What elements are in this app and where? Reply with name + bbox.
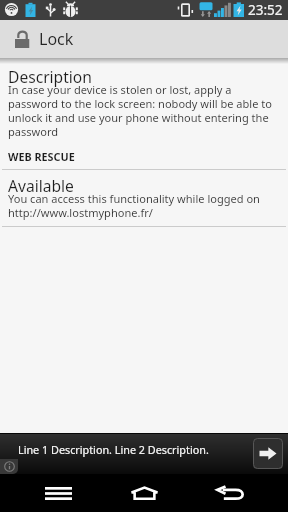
button[interactable]: Info [0,459,18,474]
staticText: Lock [39,28,74,50]
button[interactable]: Next [253,438,283,469]
button[interactable]: Back [201,474,258,512]
staticText: WEB RESCUE [8,149,75,164]
button[interactable]: Home [116,474,173,512]
button[interactable]: Recent apps [30,474,87,512]
staticText: Available [8,175,74,196]
staticText: 23:52 [248,1,283,19]
staticText: Line 1 Description. Line 2 Description. [18,442,209,457]
staticText: In case your device is stolen or lost, a… [8,82,280,139]
staticText: Description [8,66,92,87]
staticText: You can access this functionality while … [8,191,280,220]
